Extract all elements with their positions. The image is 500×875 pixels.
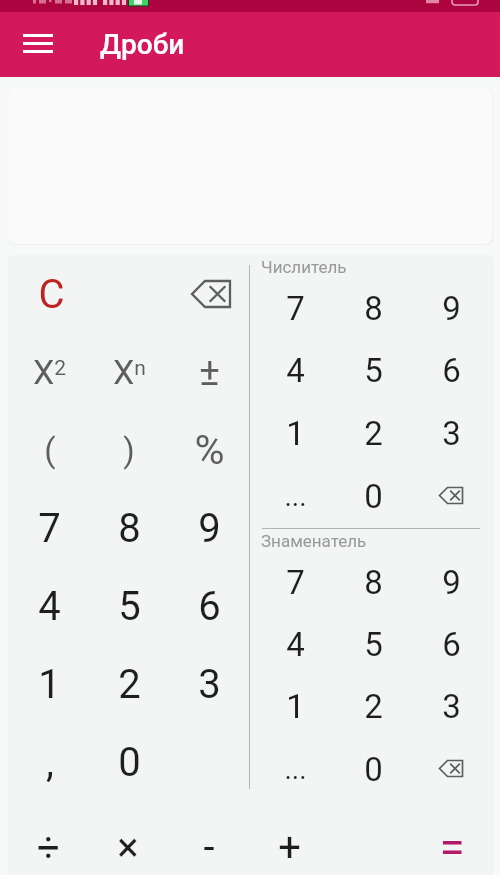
button[interactable]: 1 xyxy=(10,645,89,723)
staticText: Числитель xyxy=(261,257,347,277)
staticText: 3 xyxy=(442,414,461,453)
button[interactable]: 1 xyxy=(256,675,334,738)
button[interactable]: 0 xyxy=(89,723,169,801)
staticText: 1 xyxy=(286,414,305,453)
button[interactable]: 9 xyxy=(412,551,490,613)
button[interactable]: 8 xyxy=(89,489,169,567)
button[interactable]: 7 xyxy=(256,277,334,339)
staticText: 9 xyxy=(442,289,461,328)
button[interactable]: 6 xyxy=(412,613,490,675)
staticText: X2 xyxy=(33,352,67,392)
button[interactable]: ) xyxy=(89,411,169,489)
staticText: % xyxy=(194,426,225,474)
staticText: 8 xyxy=(118,505,141,552)
button[interactable]: 9 xyxy=(169,489,249,567)
button[interactable]: 2 xyxy=(334,402,412,465)
staticText: ± xyxy=(199,349,220,395)
staticText: 5 xyxy=(118,583,141,630)
staticText: ÷ xyxy=(37,824,60,871)
staticText: × xyxy=(117,824,139,871)
staticText: 6 xyxy=(442,625,461,664)
staticText: 2 xyxy=(364,414,383,453)
staticText: 4 xyxy=(286,625,305,664)
staticText: 7 xyxy=(286,563,305,602)
button[interactable]: 5 xyxy=(89,567,169,645)
button[interactable]: 2 xyxy=(89,645,169,723)
staticText: 5 xyxy=(364,625,383,664)
staticText: 8 xyxy=(364,289,383,328)
staticText: Xn xyxy=(113,352,146,392)
staticText: 1 xyxy=(286,687,305,726)
staticText: 8 xyxy=(364,563,383,602)
button[interactable]: Xn xyxy=(89,333,169,411)
button[interactable]: - xyxy=(168,801,249,875)
button[interactable]: 3 xyxy=(169,645,249,723)
button[interactable]: 4 xyxy=(256,613,334,675)
staticText: 2 xyxy=(364,687,383,726)
staticText: 4 xyxy=(38,583,61,630)
button[interactable]: 7 xyxy=(256,551,334,613)
button[interactable]: , xyxy=(10,723,89,801)
button[interactable]: 5 xyxy=(334,613,412,675)
button[interactable]: 0 xyxy=(334,738,412,801)
staticText: 7 xyxy=(286,289,305,328)
button[interactable]: 3 xyxy=(412,675,490,738)
staticText: 5 xyxy=(364,351,383,390)
staticText: Знаменатель xyxy=(261,531,367,551)
staticText: ... xyxy=(284,480,307,513)
button[interactable]: + xyxy=(249,801,330,875)
button[interactable]: × xyxy=(88,801,168,875)
button[interactable]: ± xyxy=(169,333,249,411)
button[interactable]: 1 xyxy=(256,402,334,465)
staticText: 0 xyxy=(118,739,141,786)
button[interactable]: 8 xyxy=(334,551,412,613)
staticText: 3 xyxy=(198,661,221,708)
staticText: - xyxy=(203,824,215,871)
button[interactable]: 6 xyxy=(412,339,490,402)
staticText: 3 xyxy=(442,687,461,726)
button[interactable]: = xyxy=(411,801,492,875)
staticText: 1 xyxy=(38,661,61,708)
staticText: 6 xyxy=(442,351,461,390)
button[interactable]: 0 xyxy=(334,465,412,528)
button[interactable]: C xyxy=(12,255,91,333)
staticText: 7 xyxy=(38,505,61,552)
button[interactable]: % xyxy=(169,411,249,489)
button[interactable]: Menu xyxy=(14,21,62,69)
button[interactable]: ... xyxy=(256,465,334,528)
button[interactable]: 7 xyxy=(10,489,89,567)
button[interactable]: Backspace xyxy=(412,737,490,800)
button[interactable]: Backspace xyxy=(412,464,490,527)
staticText: 6 xyxy=(198,583,221,630)
staticText: , xyxy=(46,739,54,786)
button[interactable]: ÷ xyxy=(8,801,88,875)
button[interactable]: X2 xyxy=(10,333,89,411)
button[interactable]: ... xyxy=(256,738,334,801)
button[interactable]: 2 xyxy=(334,675,412,738)
staticText: = xyxy=(439,820,465,874)
staticText: Дроби xyxy=(100,28,185,61)
button[interactable]: 8 xyxy=(334,277,412,339)
staticText: 0 xyxy=(364,750,383,789)
button[interactable]: 3 xyxy=(412,402,490,465)
staticText: 9 xyxy=(442,563,461,602)
staticText: ) xyxy=(123,431,135,470)
button[interactable]: 6 xyxy=(169,567,249,645)
staticText: C xyxy=(38,271,65,318)
staticText: ( xyxy=(44,431,56,470)
button[interactable]: 4 xyxy=(10,567,89,645)
staticText: + xyxy=(278,824,301,871)
button[interactable]: ( xyxy=(10,411,89,489)
button[interactable]: 5 xyxy=(334,339,412,402)
button[interactable]: 4 xyxy=(256,339,334,402)
button[interactable]: 9 xyxy=(412,277,490,339)
staticText: 4 xyxy=(286,351,305,390)
staticText: 2 xyxy=(118,661,141,708)
staticText: ... xyxy=(284,753,307,786)
staticText: 0 xyxy=(364,477,383,516)
staticText: 9 xyxy=(198,505,221,552)
button[interactable]: Backspace xyxy=(171,255,251,333)
